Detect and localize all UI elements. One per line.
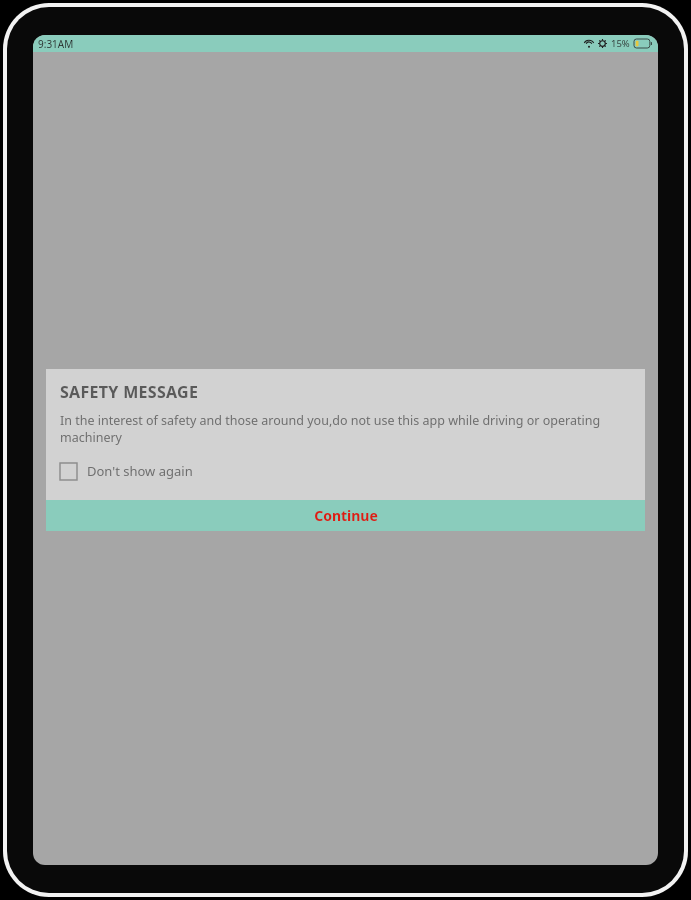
staticText: Don't show again bbox=[87, 462, 193, 480]
button[interactable]: Don't show again bbox=[60, 460, 193, 482]
staticText: 15% bbox=[611, 37, 630, 50]
staticText: SAFETY MESSAGE bbox=[60, 381, 199, 403]
staticText: 9:31AM bbox=[38, 37, 74, 51]
staticText: In the interest of safety and those arou… bbox=[60, 412, 631, 446]
staticText: Continue bbox=[314, 506, 378, 525]
button[interactable]: Continue bbox=[46, 500, 645, 531]
